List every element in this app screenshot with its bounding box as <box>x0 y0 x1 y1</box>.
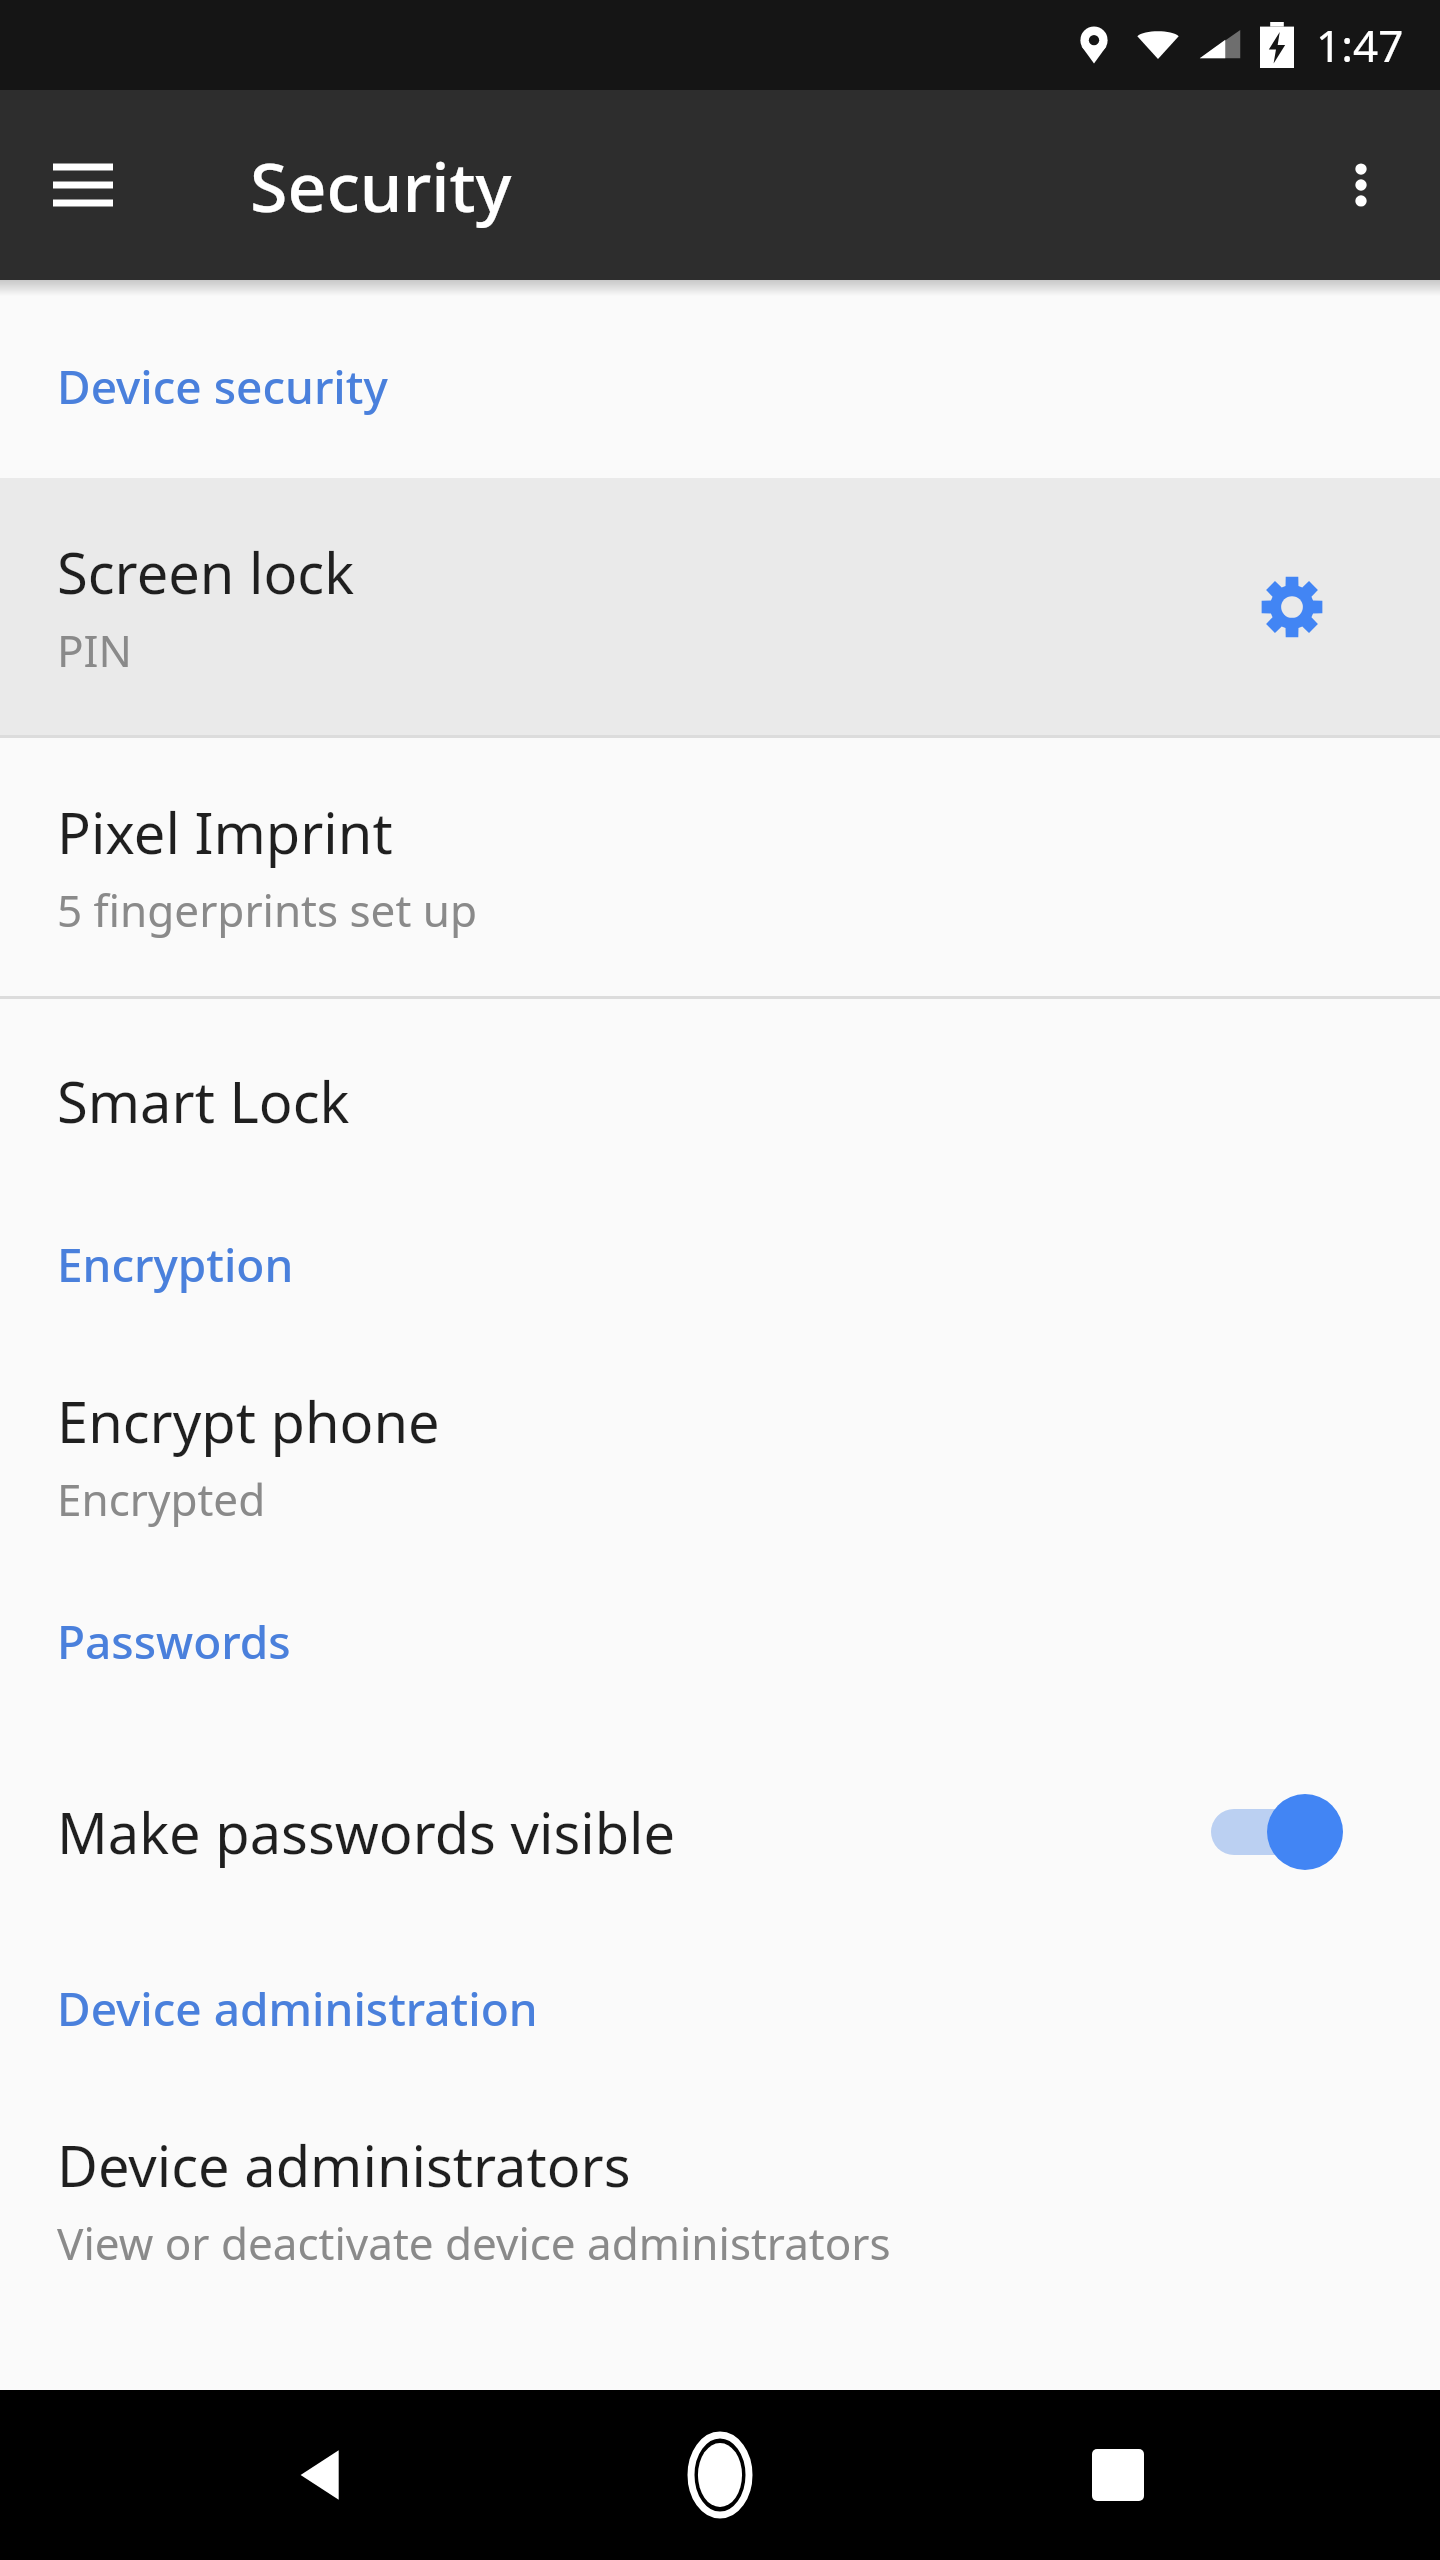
staticText: Device administration <box>57 1977 538 2040</box>
button[interactable]: Device administrators <box>0 2100 1440 2300</box>
staticText: Pixel Imprint <box>57 794 393 870</box>
staticText: 5 fingerprints set up <box>57 880 477 940</box>
button[interactable]: Screen lock settings <box>1244 559 1340 655</box>
button[interactable]: Encrypt phone <box>0 1356 1440 1556</box>
button[interactable]: Make passwords visible <box>0 1733 1440 1931</box>
staticText: 1:47 <box>1316 15 1404 75</box>
staticText: View or deactivate device administrators <box>57 2213 891 2273</box>
button[interactable]: Back <box>248 2400 398 2550</box>
staticText: Device administrators <box>57 2127 631 2203</box>
staticText: Device security <box>57 355 388 418</box>
button[interactable]: Recent apps <box>1043 2400 1193 2550</box>
button[interactable]: More options <box>1306 130 1416 240</box>
button[interactable]: Smart Lock <box>0 999 1440 1203</box>
staticText: Encrypted <box>57 1469 266 1529</box>
staticText: Passwords <box>57 1610 291 1673</box>
button[interactable]: Screen lock <box>0 478 1440 735</box>
staticText: Encryption <box>57 1233 294 1296</box>
staticText: PIN <box>57 620 132 680</box>
staticText: Screen lock <box>57 534 355 610</box>
button[interactable]: Home <box>645 2400 795 2550</box>
button[interactable]: Open navigation drawer <box>28 130 138 240</box>
button[interactable]: Pixel Imprint <box>0 738 1440 996</box>
button[interactable]: Make passwords visible toggle <box>1205 1784 1355 1880</box>
staticText: Encrypt phone <box>57 1383 440 1459</box>
staticText: Smart Lock <box>57 1063 350 1139</box>
staticText: Make passwords visible <box>57 1794 676 1870</box>
staticText: Security <box>250 139 512 232</box>
